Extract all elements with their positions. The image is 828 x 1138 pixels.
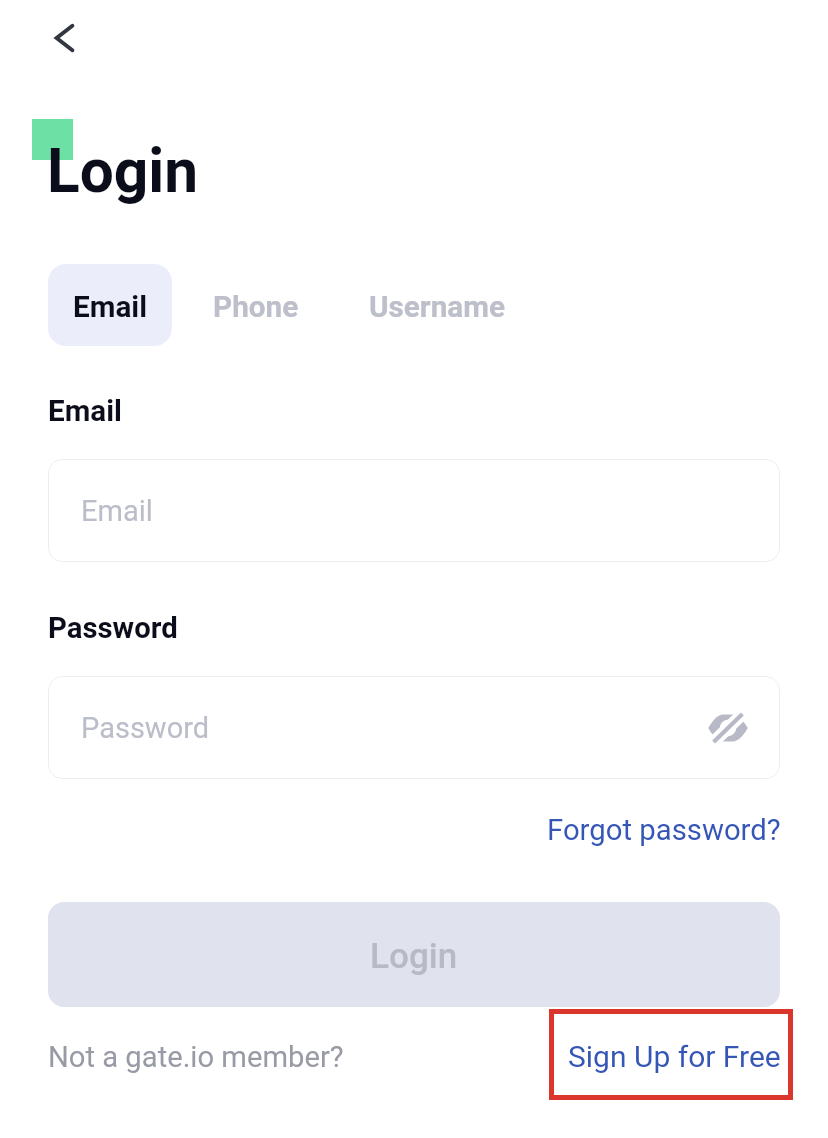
staticText: Username xyxy=(369,289,506,324)
staticText: Login xyxy=(370,936,458,977)
staticText: Login xyxy=(47,136,199,207)
staticText: Email xyxy=(73,289,148,324)
button[interactable]: Phone xyxy=(191,264,321,346)
staticText: Password xyxy=(48,611,178,645)
button[interactable]: Login xyxy=(48,902,780,1007)
staticText: Sign Up for Free xyxy=(568,1039,781,1074)
button[interactable]: Email xyxy=(48,264,172,346)
staticText: Phone xyxy=(213,289,299,324)
staticText: Email xyxy=(48,394,122,429)
button[interactable]: Password xyxy=(48,676,780,779)
button[interactable]: Show password xyxy=(700,700,756,756)
staticText: Email xyxy=(81,494,153,528)
button[interactable]: Back xyxy=(27,0,101,74)
button[interactable]: Sign Up for Free xyxy=(549,1009,793,1100)
button[interactable]: Username xyxy=(350,264,524,346)
button[interactable]: Forgot password? xyxy=(531,799,797,861)
staticText: Password xyxy=(81,711,210,745)
staticText: Forgot password? xyxy=(547,813,781,847)
staticText: Not a gate.io member? xyxy=(48,1040,344,1074)
button[interactable]: Email xyxy=(48,459,780,562)
